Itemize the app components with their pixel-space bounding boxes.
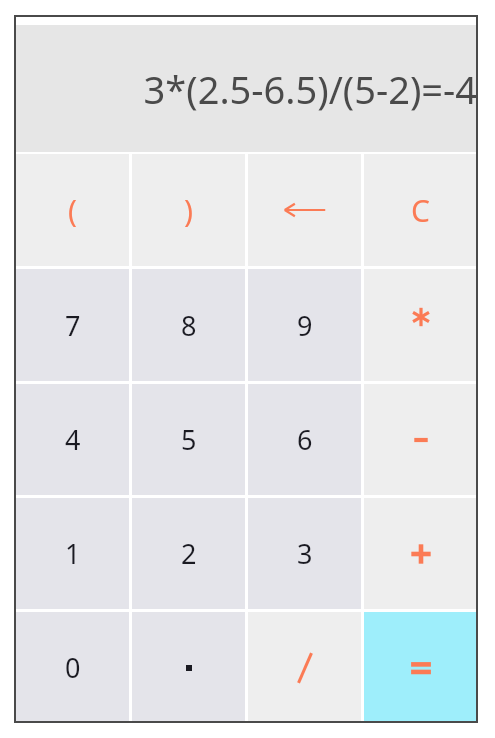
button[interactable]: 0 [16, 612, 129, 723]
button[interactable]: 4 [16, 384, 129, 495]
staticText: 4 [65, 421, 81, 458]
button[interactable] [364, 384, 477, 495]
button[interactable] [364, 498, 477, 609]
button[interactable] [364, 612, 477, 723]
button[interactable]: C [364, 154, 477, 266]
button[interactable] [248, 612, 361, 723]
button[interactable]: 2 [132, 498, 245, 609]
button[interactable]: 3 [248, 498, 361, 609]
staticText: 8 [181, 307, 197, 344]
staticText: C [411, 190, 430, 231]
button[interactable]: 5 [132, 384, 245, 495]
staticText: 9 [297, 307, 313, 344]
staticText: ) [184, 190, 193, 231]
button[interactable]: 9 [248, 269, 361, 381]
button[interactable] [132, 612, 245, 723]
staticText: 5 [181, 421, 197, 458]
button[interactable]: 7 [16, 269, 129, 381]
staticText: 7 [65, 307, 81, 344]
button[interactable]: 1 [16, 498, 129, 609]
staticText: 2 [181, 535, 197, 572]
button[interactable]: 8 [132, 269, 245, 381]
button[interactable]: ) [132, 154, 245, 266]
staticText: 1 [65, 535, 81, 572]
button[interactable]: 6 [248, 384, 361, 495]
button[interactable]: ( [16, 154, 129, 266]
staticText: ( [68, 190, 77, 231]
button[interactable] [364, 269, 477, 381]
button[interactable]: Backspace [248, 154, 361, 266]
staticText: 0 [65, 649, 81, 686]
staticText: 3*(2.5-6.5)/(5-2)=-4 [143, 63, 477, 115]
staticText: 6 [297, 421, 313, 458]
staticText: 3 [297, 535, 313, 572]
